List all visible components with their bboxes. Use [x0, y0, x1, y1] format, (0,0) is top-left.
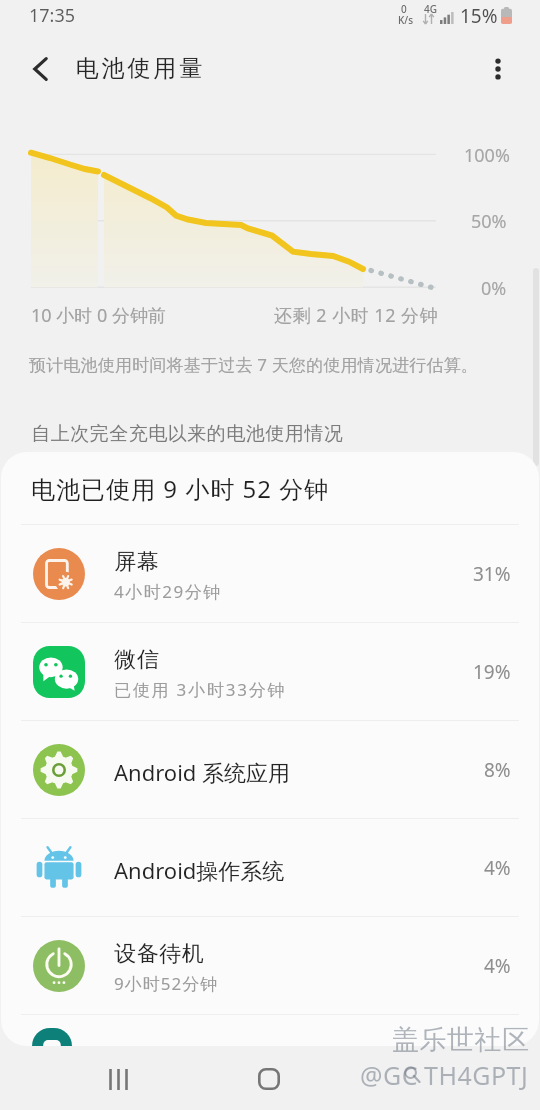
staticText: 15% [460, 3, 498, 29]
staticText: 4% [484, 953, 511, 979]
button[interactable]: 微信 [1, 623, 539, 720]
button[interactable]: More options [474, 45, 521, 92]
staticText: 100% [464, 143, 510, 168]
button[interactable]: Back [396, 1055, 444, 1103]
staticText: 已使用 3小时33分钟 [114, 678, 287, 701]
staticText: 设备待机 [114, 940, 204, 968]
staticText: 电池使用量 [74, 54, 204, 83]
button[interactable]: Android 系统应用 [1, 721, 539, 818]
staticText: 10 小时 0 分钟前 [31, 303, 166, 328]
button[interactable]: Android操作系统 [1, 819, 539, 916]
staticText: 预计电池使用时间将基于过去 7 天您的使用情况进行估算。 [29, 353, 479, 376]
staticText: 电池已使用 9 小时 52 分钟 [31, 472, 330, 505]
staticText: 0% [481, 276, 507, 301]
staticText: 9小时52分钟 [114, 972, 219, 995]
button[interactable]: Home [245, 1055, 293, 1103]
staticText: TH4GPTJ [424, 1058, 529, 1092]
staticText: 盖乐世社区 [392, 1023, 530, 1057]
staticText: 8% [484, 757, 511, 783]
staticText: 自上次完全充电以来的电池使用情况 [31, 422, 343, 446]
staticText: 屏幕 [114, 548, 159, 576]
staticText: 31% [473, 561, 511, 587]
staticText: 4小时29分钟 [114, 580, 222, 603]
button[interactable]: 屏幕 [1, 525, 539, 622]
staticText: K/s [398, 13, 414, 27]
staticText: 17:35 [29, 3, 76, 28]
staticText: 0 [401, 2, 407, 16]
staticText: Android 系统应用 [114, 757, 291, 787]
staticText: 微信 [114, 646, 159, 674]
button[interactable]: 设备待机 [1, 917, 539, 1014]
staticText: 4% [484, 855, 511, 881]
button[interactable]: Back [17, 45, 64, 92]
staticText: 4G [424, 2, 437, 16]
button[interactable]: Recents [94, 1055, 142, 1103]
staticText: 还剩 2 小时 12 分钟 [274, 303, 439, 328]
staticText: 19% [473, 659, 511, 685]
staticText: Android操作系统 [114, 855, 285, 885]
staticText: @GC [360, 1058, 418, 1092]
staticText: 50% [471, 209, 507, 234]
